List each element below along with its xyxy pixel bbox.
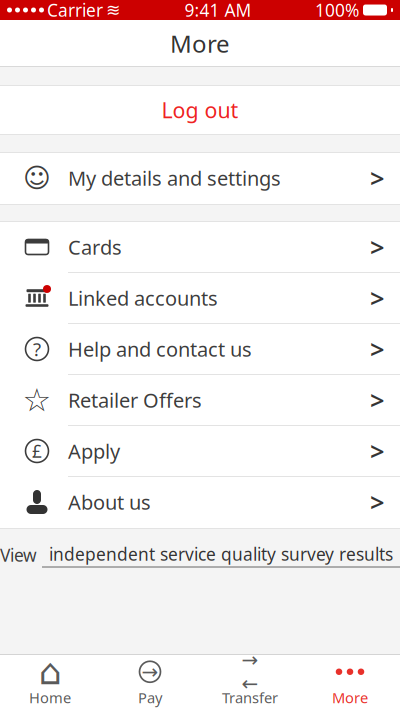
staticText: About us (68, 489, 151, 515)
staticText: Linked accounts (68, 285, 218, 311)
button[interactable]: About us (0, 477, 400, 528)
staticText: More (170, 28, 230, 59)
button[interactable]: ? (0, 324, 400, 375)
staticText: My details and settings (68, 165, 281, 191)
button[interactable]: Log out (0, 86, 400, 134)
staticText: > (370, 485, 384, 519)
staticText: Log out (161, 96, 238, 124)
staticText: Transfer (222, 688, 278, 707)
button[interactable]: ☺ (0, 153, 400, 204)
staticText: ← (241, 672, 258, 695)
staticText: ⌂ (38, 651, 61, 692)
staticText: Home (29, 688, 71, 707)
staticText: Carrier (47, 0, 103, 21)
staticText: → (141, 660, 158, 683)
staticText: View (0, 543, 42, 566)
button[interactable]: → (100, 655, 200, 711)
staticText: Help and contact us (68, 336, 252, 362)
button[interactable]: Cards (0, 222, 400, 273)
staticText: Apply (68, 438, 120, 464)
button[interactable]: → (200, 655, 300, 711)
button[interactable]: View (0, 529, 400, 581)
staticText: > (370, 383, 384, 417)
staticText: £ (32, 439, 42, 462)
staticText: ☺ (23, 163, 51, 193)
staticText: > (370, 161, 384, 195)
staticText: ☆ (22, 382, 51, 418)
staticText: ? (33, 337, 41, 361)
button[interactable]: More (300, 655, 400, 711)
staticText: 100% (315, 0, 359, 21)
staticText: → (241, 649, 258, 671)
staticText: > (370, 332, 384, 366)
staticText: independent service quality survey resul… (49, 542, 393, 565)
button[interactable]: £ (0, 426, 400, 477)
staticText: > (370, 434, 384, 468)
staticText: More (332, 688, 368, 707)
button[interactable]: ⌂ (0, 655, 100, 711)
button[interactable]: Linked accounts (0, 273, 400, 324)
staticText: ≋ (106, 0, 121, 20)
staticText: Retailer Offers (68, 387, 202, 413)
staticText: Cards (68, 234, 122, 260)
staticText: > (370, 281, 384, 315)
staticText: > (370, 230, 384, 264)
button[interactable]: ☆ (0, 375, 400, 426)
staticText: Pay (138, 688, 162, 707)
staticText: 9:41 AM (184, 0, 251, 21)
